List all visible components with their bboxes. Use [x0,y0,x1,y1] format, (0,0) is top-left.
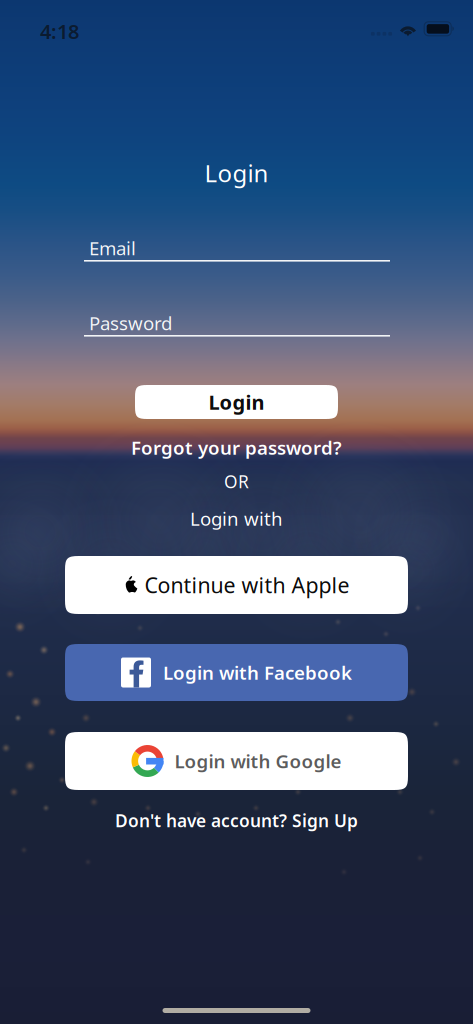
button[interactable]: Continue with Apple [65,556,408,614]
staticText: Login with Facebook [163,660,352,685]
staticText: Continue with Apple [144,571,349,599]
staticText: Password [89,311,172,335]
staticText: Login with Google [174,749,341,773]
button[interactable]: Login with Google [65,732,408,790]
staticText: Email [89,236,136,260]
staticText: Forgot your password? [131,435,342,460]
staticText: Login [204,157,268,189]
staticText: Login [208,389,264,415]
button[interactable]: Login [135,385,338,419]
staticText: OR [224,470,249,493]
staticText: 4:18 [40,18,79,45]
staticText: Login with [190,506,283,531]
staticText: Don't have account? Sign Up [115,809,358,832]
button[interactable]: Email [84,236,390,262]
button[interactable]: Don't have account? Sign Up [115,809,358,832]
button[interactable]: Password [84,311,390,337]
button[interactable]: Forgot your password? [131,435,342,460]
button[interactable]: Login with Facebook [65,644,408,701]
